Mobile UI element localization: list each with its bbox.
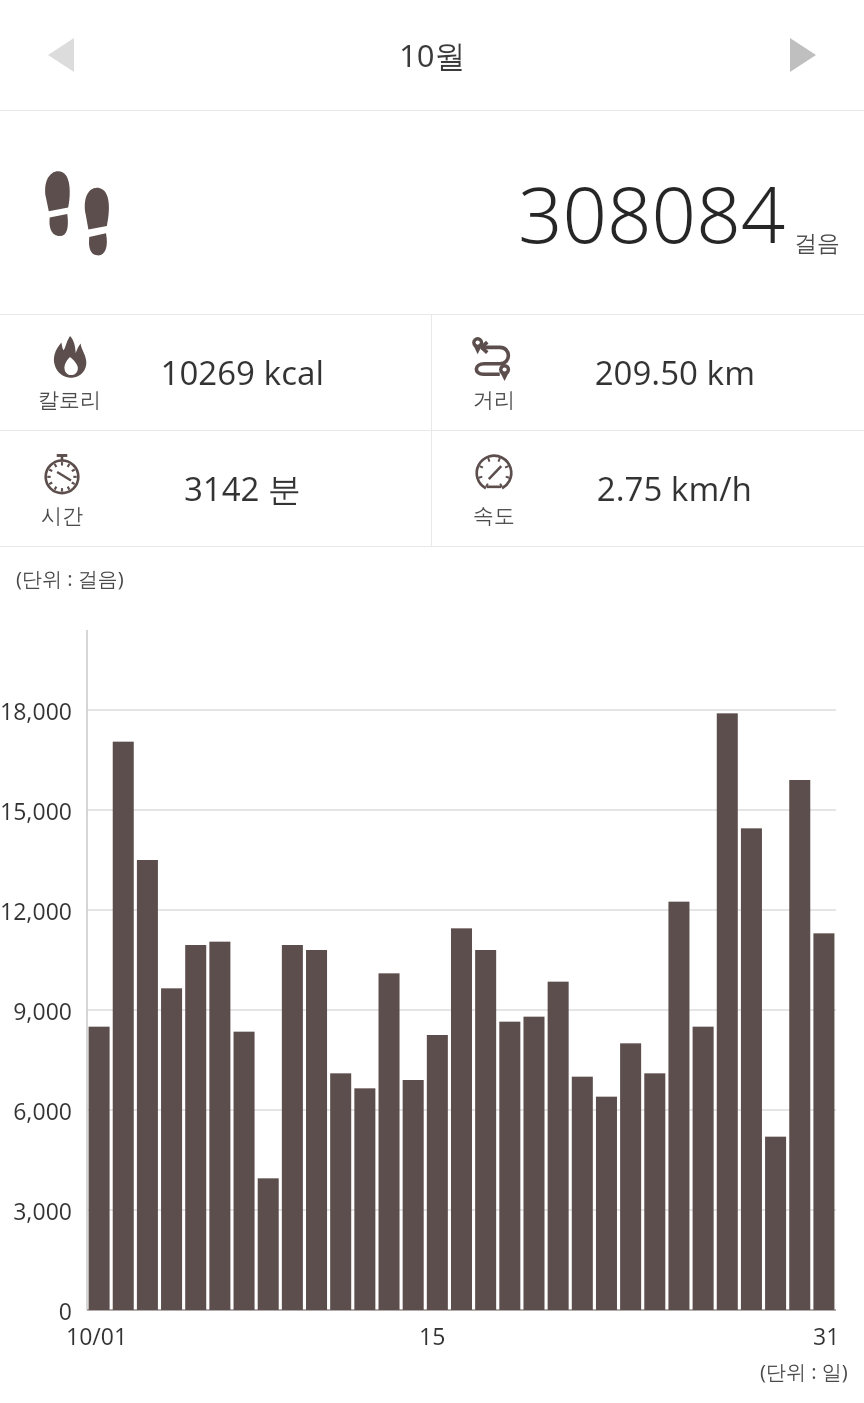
staticText: 15 — [419, 1320, 446, 1351]
button[interactable]: 308084 — [0, 111, 864, 314]
staticText: 거리 — [473, 387, 515, 413]
staticText: 9,000 — [0, 995, 72, 1026]
staticText: 10/01 — [66, 1320, 128, 1351]
button[interactable]: 속도 — [432, 431, 864, 546]
button[interactable]: Previous month — [22, 16, 100, 94]
button[interactable]: 시간 — [0, 431, 431, 546]
staticText: 시간 — [41, 503, 83, 529]
staticText: 308084 — [518, 160, 786, 266]
button[interactable]: 거리 — [432, 315, 864, 430]
staticText: 10월 — [399, 34, 466, 76]
staticText: 걸음 — [794, 229, 840, 258]
staticText: 3,000 — [0, 1195, 72, 1226]
button[interactable]: 칼로리 — [0, 315, 431, 430]
staticText: 2.75 km/h — [596, 466, 752, 511]
staticText: 12,000 — [0, 895, 72, 926]
staticText: 0 — [0, 1295, 72, 1326]
staticText: 15,000 — [0, 795, 72, 826]
staticText: (단위 : 걸음) — [16, 565, 124, 592]
staticText: (단위 : 일) — [760, 1358, 848, 1385]
staticText: 속도 — [473, 503, 515, 529]
button[interactable]: Next month — [764, 16, 842, 94]
staticText: 10269 kcal — [160, 350, 324, 395]
staticText: 31 — [813, 1320, 840, 1351]
staticText: 6,000 — [0, 1095, 72, 1126]
staticText: 3142 분 — [183, 466, 301, 511]
staticText: 209.50 km — [594, 350, 755, 395]
staticText: 18,000 — [0, 695, 72, 726]
staticText: 칼로리 — [38, 387, 101, 413]
